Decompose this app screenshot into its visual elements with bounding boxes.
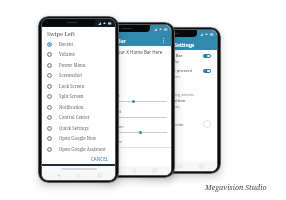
staticText: Control Center — [59, 114, 90, 120]
button[interactable]: Enable Home Bar — [148, 53, 213, 64]
button[interactable]: Home — [176, 162, 185, 171]
staticText: Avoid gesture present — [148, 68, 193, 74]
staticText: Volume — [59, 51, 75, 57]
button[interactable]: Bar Position — [101, 130, 167, 134]
button[interactable]: More options — [159, 36, 167, 44]
button[interactable]: Lock Screen — [47, 81, 111, 91]
staticText: Disable interaction on bar — [148, 74, 180, 84]
staticText: Open Google Assistant — [59, 146, 106, 152]
staticText: Screenshot — [59, 72, 82, 78]
button[interactable]: Avoid gesture present — [148, 68, 213, 84]
button[interactable]: Recent — [47, 39, 111, 49]
staticText: Lock Screen — [59, 83, 85, 89]
button[interactable]: Screenshot — [47, 70, 111, 80]
button[interactable]: Recents — [150, 166, 159, 175]
button[interactable]: Power Menu — [47, 60, 111, 70]
staticText: Notification — [59, 104, 84, 110]
button[interactable]: Recents — [95, 171, 104, 180]
staticText: Megavision Studio — [205, 183, 267, 193]
button[interactable]: U I Home Bar color — [148, 120, 213, 128]
staticText: Home Bar position, height — [148, 104, 181, 114]
button[interactable]: Enable Home Bar — [203, 54, 211, 58]
staticText: Bar Width — [101, 93, 120, 98]
staticText: Home Bar — [101, 37, 126, 44]
button[interactable]: Bar Height — [101, 115, 167, 119]
button[interactable]: Back — [109, 166, 118, 175]
button[interactable]: Quick Settings — [47, 123, 111, 133]
staticText: Turn off Home Bar — [148, 59, 180, 64]
button[interactable]: Bar Width — [101, 99, 167, 103]
button[interactable]: Split Screen — [47, 91, 111, 101]
button[interactable]: CANCEL — [89, 155, 111, 163]
button[interactable]: Home Bar Position — [148, 98, 213, 114]
staticText: Power Menu — [59, 62, 86, 68]
staticText: Home Bar Settings — [148, 41, 195, 48]
staticText: Bar Margin — [101, 139, 122, 144]
button[interactable]: Control Center — [47, 112, 111, 122]
staticText: Swipe Left — [47, 30, 75, 37]
other: Pick colour — [203, 120, 211, 128]
staticText: Open Google Now — [59, 135, 97, 141]
staticText: Quick Settings — [59, 125, 89, 131]
staticText: U I Home Bar color — [148, 122, 184, 127]
button[interactable]: Open Google Assistant — [47, 144, 111, 154]
staticText: Bar Height — [101, 109, 122, 114]
button[interactable]: Avoid gesture present — [203, 69, 211, 73]
staticText: Split Screen — [59, 93, 84, 99]
button[interactable]: Recents — [197, 162, 206, 171]
button[interactable]: Volume — [47, 49, 111, 59]
button[interactable]: Back — [54, 171, 63, 180]
button[interactable]: Open Google Now — [47, 133, 111, 143]
staticText: Enable Home Bar — [148, 53, 183, 59]
staticText: Home Bar Position — [148, 98, 186, 104]
staticText: Recent — [59, 41, 74, 47]
button[interactable]: Back — [156, 162, 165, 171]
staticText: Colors, positioning, actions — [148, 92, 194, 97]
button[interactable]: Notification — [47, 102, 111, 112]
staticText: Adjust Your X Home Bar Here — [101, 49, 163, 55]
button[interactable]: Home — [74, 171, 83, 180]
button[interactable]: Home — [130, 166, 139, 175]
staticText: Bar Position — [101, 124, 124, 129]
staticText: CANCEL — [91, 156, 109, 162]
